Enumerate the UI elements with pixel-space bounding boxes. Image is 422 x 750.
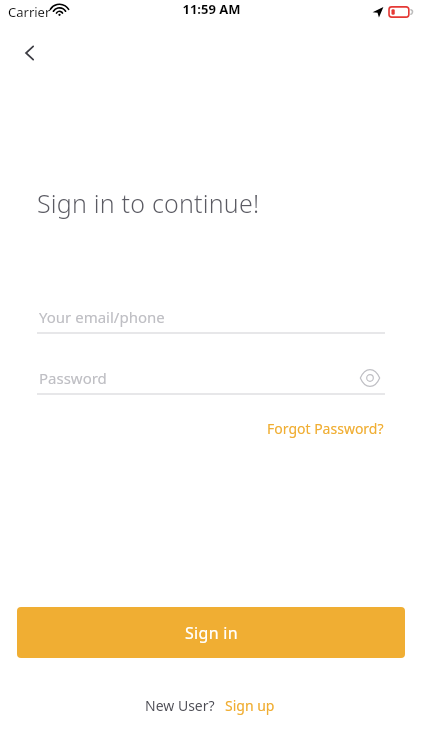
staticText: Sign in to continue! [37,186,260,220]
button[interactable]: Show password [355,363,385,393]
staticText: Forgot Password? [267,419,384,438]
staticText: New User? [145,696,215,715]
button[interactable]: Your email/phone [37,300,385,334]
staticText: Password [39,368,107,388]
button[interactable]: Forgot Password? [265,415,386,442]
staticText: Sign in [185,622,238,644]
staticText: Sign up [225,696,275,715]
button[interactable]: Password [37,361,385,395]
staticText: 11:59 AM [182,0,241,18]
button[interactable]: Sign in [17,607,405,658]
button[interactable]: Back [10,33,50,73]
staticText: Carrier [8,3,51,21]
staticText: Your email/phone [39,307,165,327]
button[interactable]: Sign up [223,692,277,719]
